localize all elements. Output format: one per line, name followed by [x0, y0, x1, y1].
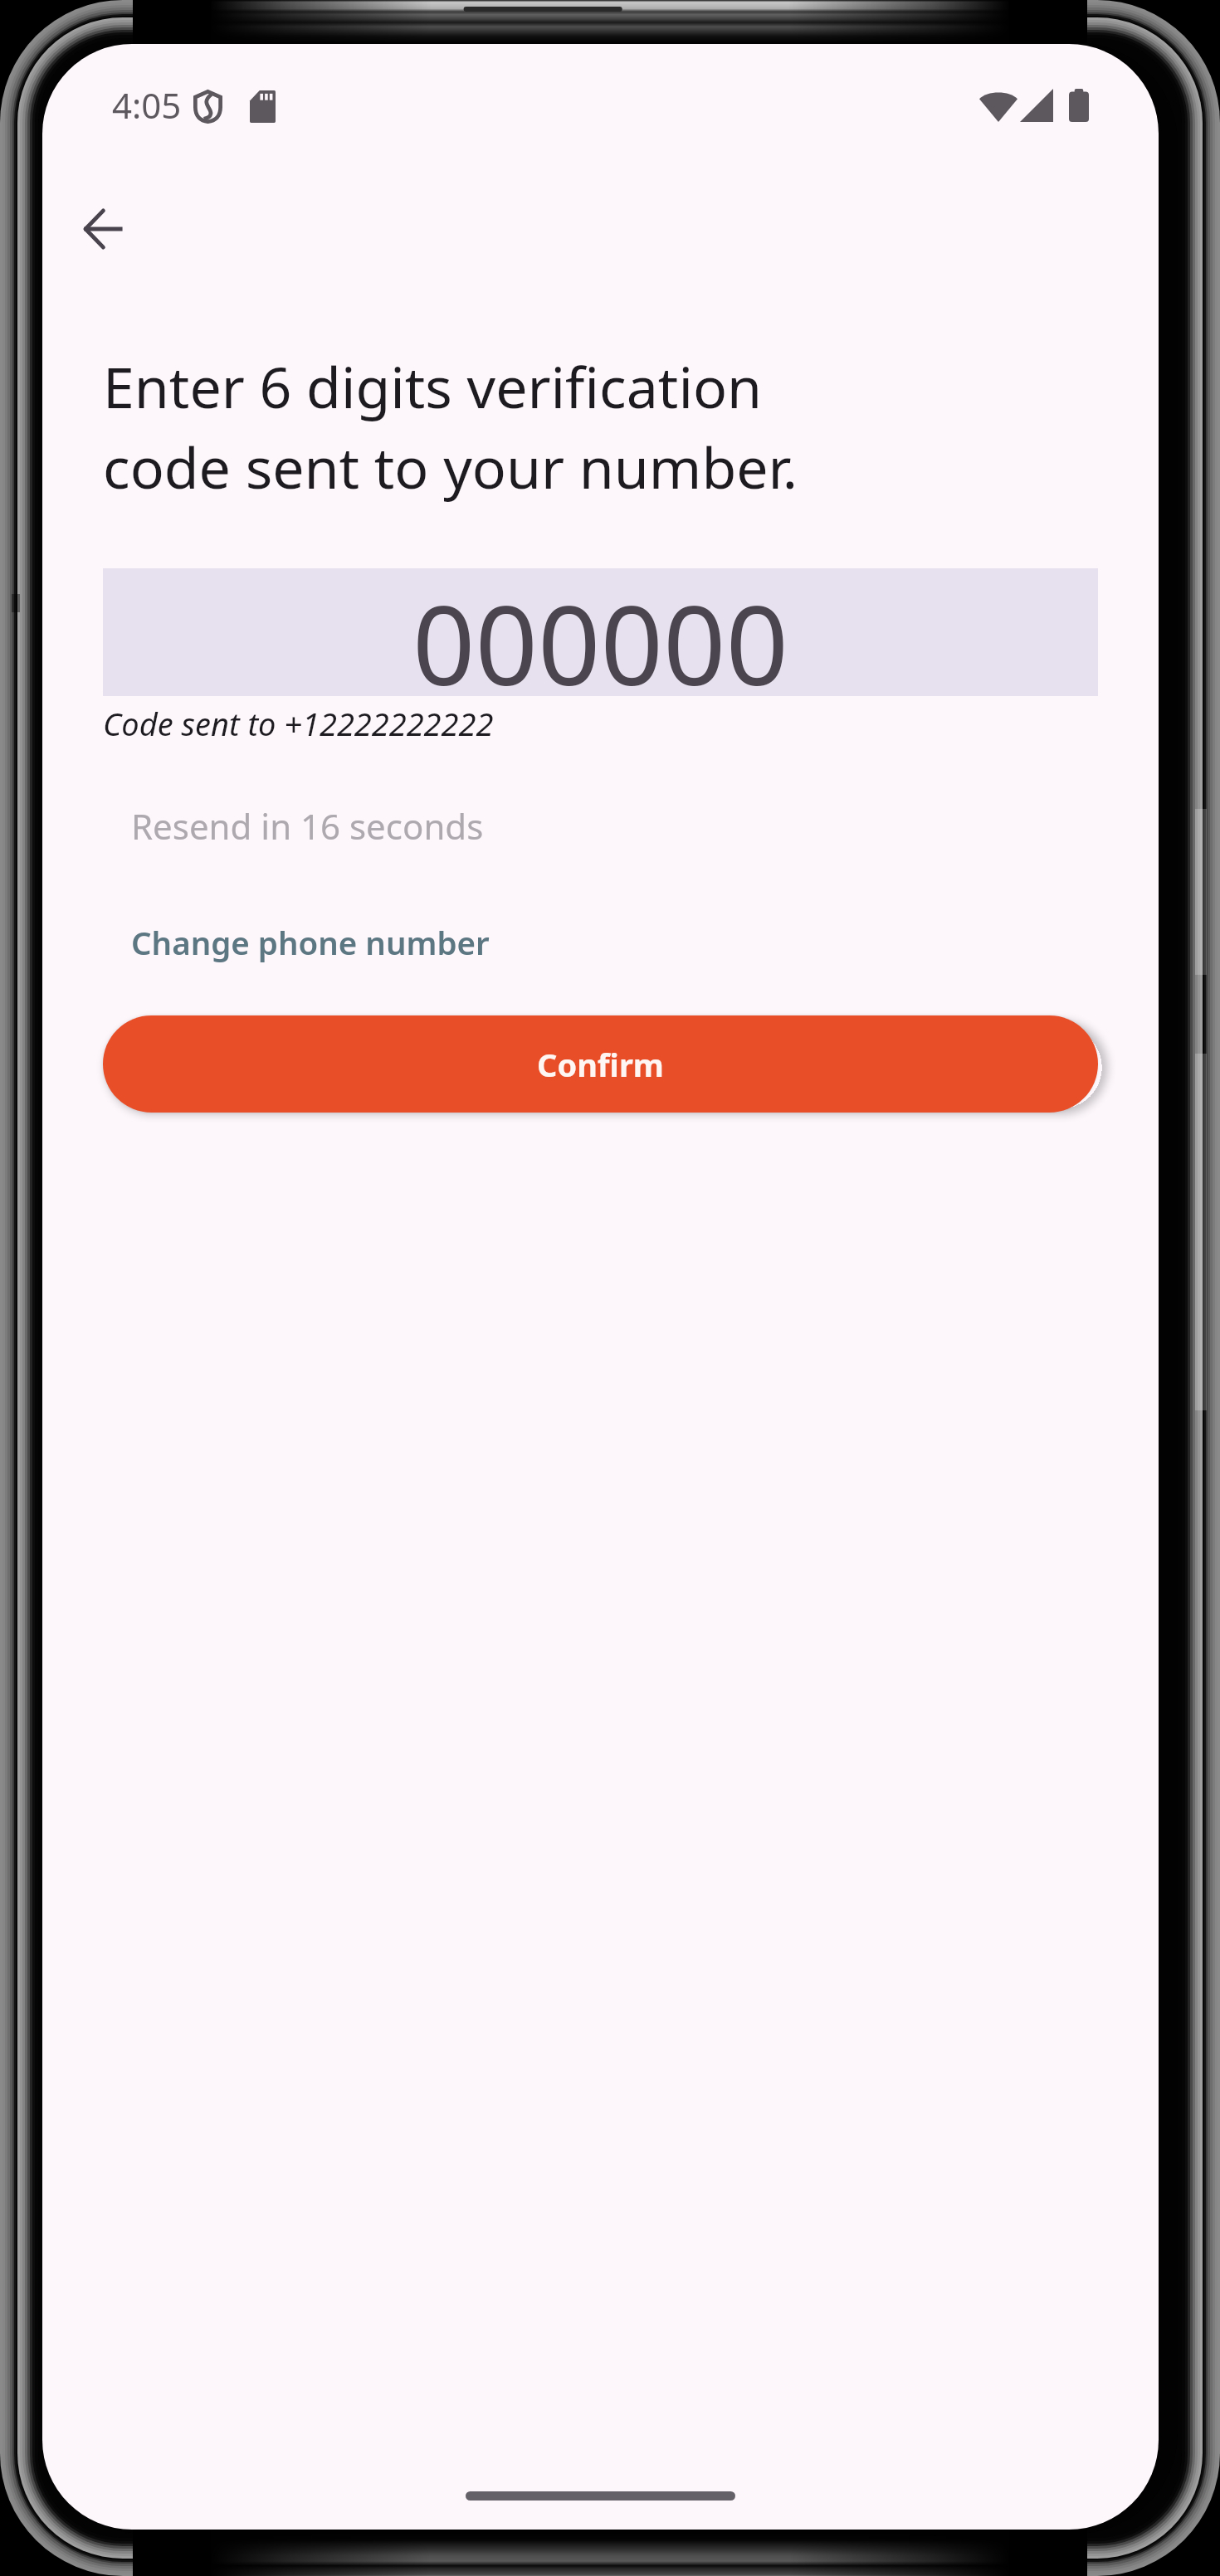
staticText: Code sent to +12222222222 [103, 702, 494, 745]
button[interactable]: Change phone number [123, 914, 498, 971]
staticText: Confirm [537, 1043, 664, 1086]
button[interactable]: 000000 [103, 568, 1098, 696]
staticText: 000000 [412, 568, 789, 696]
button[interactable]: Back [57, 183, 149, 275]
button[interactable]: Resend in 16 seconds [123, 796, 492, 856]
button[interactable]: Confirm [103, 1015, 1098, 1113]
staticText: 4:05 [112, 81, 182, 129]
staticText: Enter 6 digits verification code sent to… [103, 348, 798, 505]
staticText: Resend in 16 seconds [131, 802, 484, 850]
staticText: Change phone number [131, 921, 490, 964]
